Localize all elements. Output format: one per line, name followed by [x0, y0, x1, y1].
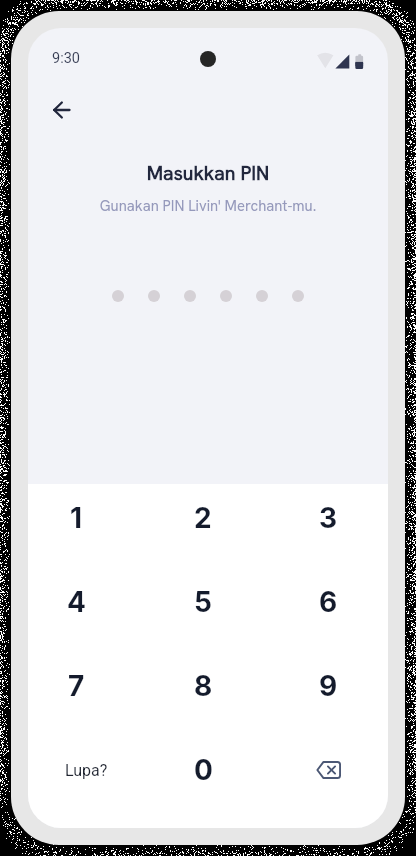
button[interactable]: 8	[148, 644, 258, 728]
staticText: 8	[194, 669, 213, 703]
staticText: 4	[67, 585, 86, 619]
staticText: 6	[319, 585, 338, 619]
staticText: Gunakan PIN Livin' Merchant-mu.	[28, 196, 388, 215]
button[interactable]: Lupa?	[31, 728, 141, 812]
staticText: Lupa?	[65, 761, 108, 780]
staticText: Masukkan PIN	[28, 160, 388, 185]
staticText: 7	[68, 669, 85, 703]
button[interactable]: 3	[273, 476, 383, 560]
button[interactable]: 5	[148, 560, 258, 644]
button[interactable]: Backspace	[273, 728, 383, 812]
staticText: 1	[70, 501, 83, 535]
button[interactable]: 6	[273, 560, 383, 644]
button[interactable]: 1	[28, 476, 131, 560]
other: Backspace	[306, 748, 350, 792]
button[interactable]: 7	[28, 644, 131, 728]
button[interactable]: 2	[148, 476, 258, 560]
button[interactable]: Back	[39, 88, 83, 132]
staticText: 9	[319, 669, 338, 703]
staticText: 0	[194, 753, 213, 787]
staticText: 3	[319, 501, 338, 535]
button[interactable]: 9	[273, 644, 383, 728]
staticText: 9:30	[52, 50, 80, 67]
staticText: 2	[194, 501, 212, 535]
staticText: 5	[194, 585, 212, 619]
button[interactable]: 4	[28, 560, 131, 644]
button[interactable]: 0	[148, 728, 258, 812]
